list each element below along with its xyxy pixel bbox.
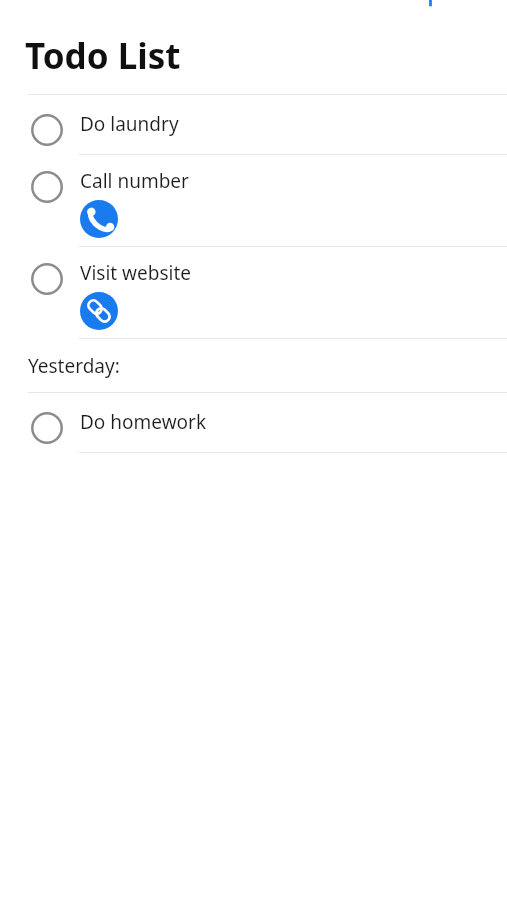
staticText: Visit website xyxy=(80,260,192,286)
button[interactable]: Call number xyxy=(0,160,507,246)
staticText: Do homework xyxy=(80,409,207,435)
staticText: Yesterday: xyxy=(28,353,120,379)
staticText: Call number xyxy=(80,168,189,194)
button[interactable]: Visit website xyxy=(80,292,118,330)
button[interactable]: Visit website xyxy=(0,252,507,338)
staticText: Do laundry xyxy=(80,111,179,137)
button[interactable]: Do laundry xyxy=(0,103,507,154)
button[interactable]: Call number xyxy=(80,200,118,238)
staticText: Todo List xyxy=(25,32,181,80)
button[interactable]: Do homework xyxy=(0,401,507,452)
